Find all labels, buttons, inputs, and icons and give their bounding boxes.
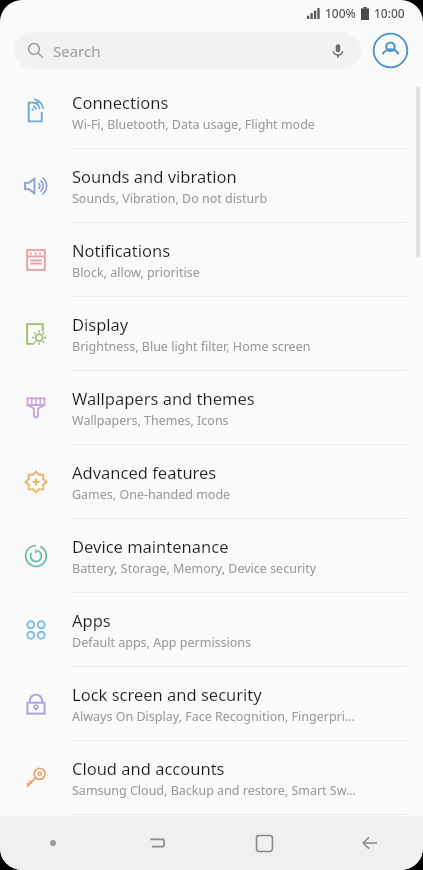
staticText: Notifications	[72, 239, 171, 261]
staticText: 10:00	[374, 5, 405, 21]
button[interactable]: Home	[211, 816, 317, 870]
staticText: Display	[72, 313, 129, 335]
button[interactable]: Account	[372, 32, 409, 69]
staticText: Connections	[72, 91, 169, 113]
button[interactable]: Back	[317, 816, 423, 870]
staticText: Brightness, Blue light filter, Home scre…	[72, 338, 311, 355]
button[interactable]: Search	[14, 32, 361, 69]
button[interactable]: Recents	[105, 816, 211, 870]
staticText: Samsung Cloud, Backup and restore, Smart…	[72, 782, 356, 799]
button[interactable]: Connections	[0, 75, 423, 148]
staticText: 100%	[325, 5, 356, 21]
staticText: Battery, Storage, Memory, Device securit…	[72, 560, 317, 577]
button[interactable]: Notifications	[0, 223, 423, 296]
button[interactable]: Device maintenance	[0, 519, 423, 592]
staticText: Search	[53, 41, 101, 61]
staticText: Wi-Fi, Bluetooth, Data usage, Flight mod…	[72, 116, 315, 133]
button[interactable]: Wallpapers and themes	[0, 371, 423, 444]
button[interactable]: Advanced features	[0, 445, 423, 518]
staticText: Sounds and vibration	[72, 165, 237, 187]
staticText: Wallpapers and themes	[72, 387, 255, 409]
staticText: Block, allow, prioritise	[72, 264, 200, 281]
staticText: Apps	[72, 609, 111, 631]
button[interactable]: Display	[0, 297, 423, 370]
staticText: Sounds, Vibration, Do not disturb	[72, 190, 268, 207]
button[interactable]: Sounds and vibration	[0, 149, 423, 222]
button[interactable]: Cloud and accounts	[0, 741, 423, 814]
button[interactable]: Voice search	[328, 41, 348, 61]
staticText: Lock screen and security	[72, 683, 262, 705]
staticText: Device maintenance	[72, 535, 229, 557]
button[interactable]: Lock screen and security	[0, 667, 423, 740]
staticText: Always On Display, Face Recognition, Fin…	[72, 708, 355, 725]
staticText: Games, One-handed mode	[72, 486, 231, 503]
staticText: Advanced features	[72, 461, 217, 483]
staticText: Cloud and accounts	[72, 757, 225, 779]
button[interactable]: Apps	[0, 593, 423, 666]
staticText: Wallpapers, Themes, Icons	[72, 412, 229, 429]
staticText: Default apps, App permissions	[72, 634, 252, 651]
